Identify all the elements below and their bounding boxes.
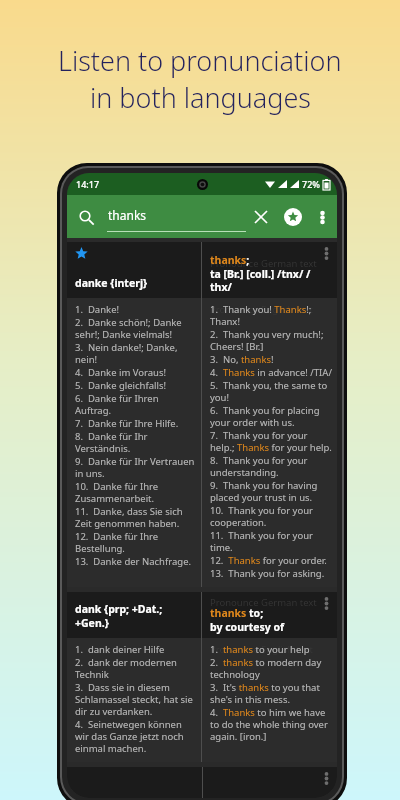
staticText: 12. Danke für Ihre Bestellung. [75, 530, 196, 555]
staticText: 2. thanks to modern day technology [210, 656, 332, 681]
staticText: 6. Thank you for placing your order with… [210, 404, 332, 429]
staticText: 5. Danke gleichfalls! [75, 379, 167, 392]
staticText: thanks [108, 207, 246, 223]
staticText: 9. Danke für Ihr Vertrauen in uns. [75, 455, 196, 480]
staticText: 1. thanks to your help [210, 643, 310, 656]
button[interactable]: Search [71, 202, 101, 232]
staticText: 9. Thank you for having placed your trus… [210, 479, 332, 504]
staticText: 1. Thank you! Thanks!; Thanx! [210, 303, 332, 328]
staticText: Pronounce German text [210, 257, 317, 270]
staticText: 14:17 [76, 178, 100, 190]
staticText: 7. Thank you for your help.; Thanks for … [210, 429, 332, 454]
staticText: 2. Danke schön!; Danke sehr!; Danke viel… [75, 316, 196, 341]
staticText: thanks; [210, 253, 250, 267]
button[interactable]: Entry options [67, 767, 337, 798]
button[interactable]: Favorites [276, 200, 310, 234]
staticText: 4. Thanks in advance! /TIA/ [210, 366, 332, 379]
staticText: 2. dank der modernen Technik [75, 656, 196, 681]
staticText: 2. Thank you very much!; Cheers! [Br.] [210, 328, 332, 353]
button[interactable]: Clear search [246, 202, 276, 232]
staticText: 11. Thank you for your time. [210, 529, 332, 554]
staticText: 10. Thank you for your cooperation. [210, 504, 332, 529]
staticText: 8. Danke für Ihr Verständnis. [75, 430, 196, 455]
button[interactable]: thanks [101, 195, 246, 238]
staticText: danke {interj} [75, 276, 148, 290]
staticText: 3. Dass sie in diesem Schlamassel steckt… [75, 681, 196, 718]
staticText: thanks to; [210, 606, 264, 620]
staticText: in both languages [90, 79, 311, 116]
staticText: 4. Danke im Voraus! [75, 366, 167, 379]
staticText: 13. Danke der Nachfrage. [75, 555, 192, 568]
staticText: 13. Thank you for asking. [210, 567, 325, 580]
staticText: 3. Nein danke!; Danke, nein! [75, 341, 196, 366]
staticText: 10. Danke für Ihre Zusammenarbeit. [75, 480, 196, 505]
staticText: 4. Thanks to him we have to do the whole… [210, 706, 332, 743]
staticText: Pronounce German text [210, 596, 317, 609]
staticText: 3. It's thanks to you that she's in this… [210, 681, 332, 706]
staticText: 1. dank deiner Hilfe [75, 643, 165, 656]
staticText: Pronounce English text [210, 643, 313, 656]
staticText: 8. Thank you for your understanding. [210, 454, 332, 479]
staticText: 7. Danke für Ihre Hilfe. [75, 417, 179, 430]
button[interactable]: Entry options [320, 770, 333, 787]
staticText: 11. Danke, dass Sie sich Zeit genommen h… [75, 505, 196, 530]
staticText: ta [Br.] [coll.] /tnx/ /thx/ [210, 267, 325, 294]
button[interactable]: danke {interj} [67, 242, 337, 587]
staticText: 5. Thank you, the same to you! [210, 379, 332, 404]
staticText: 1. Danke! [75, 303, 120, 316]
staticText: 4. Seinetwegen können wir das Ganze jetz… [75, 718, 196, 755]
staticText: 72% [302, 178, 320, 190]
button[interactable]: Entry options [320, 245, 333, 262]
button[interactable]: More options [310, 205, 334, 229]
staticText: Listen to pronunciation [58, 42, 342, 79]
staticText: 12. Thanks for your order. [210, 554, 327, 567]
staticText: dank {prp; +Dat.; +Gen.} [75, 602, 197, 630]
button[interactable]: Entry options [320, 595, 333, 612]
button[interactable]: dank {prp; +Dat.; +Gen.} [67, 592, 337, 762]
staticText: by courtesy of [210, 620, 285, 634]
staticText: Pronounce English text [210, 303, 313, 316]
staticText: 3. No, thanks! [210, 353, 274, 366]
staticText: 6. Danke für Ihren Auftrag. [75, 392, 196, 417]
